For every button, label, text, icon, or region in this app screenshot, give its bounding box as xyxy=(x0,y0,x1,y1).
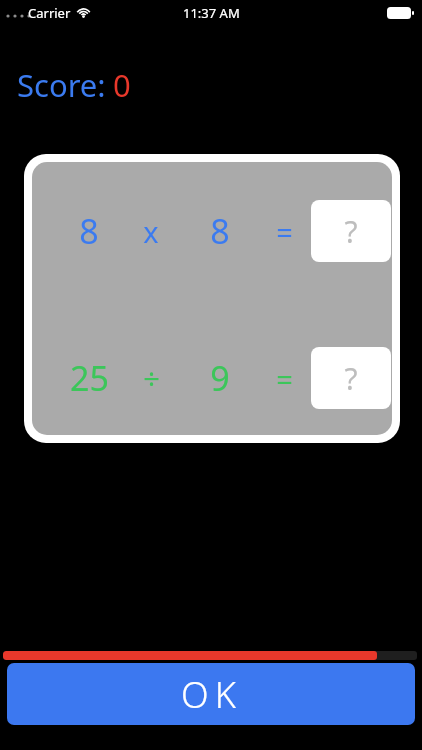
button[interactable]: Answer input xyxy=(311,347,391,409)
staticText: = xyxy=(276,359,293,398)
staticText: 11:37 AM xyxy=(183,4,240,22)
staticText: ? xyxy=(344,211,358,252)
staticText: ? xyxy=(344,358,358,399)
staticText: OK xyxy=(181,670,242,719)
staticText: 9 xyxy=(210,355,230,401)
staticText: 0 xyxy=(113,64,131,106)
staticText: 8 xyxy=(210,208,230,254)
staticText: 25 xyxy=(70,355,109,401)
staticText: ÷ xyxy=(143,359,160,398)
staticText: Score: xyxy=(17,64,106,106)
staticText: 8 xyxy=(79,208,99,254)
staticText: Carrier xyxy=(28,4,71,22)
staticText: x xyxy=(143,212,159,251)
button[interactable]: OK xyxy=(7,663,415,725)
staticText: = xyxy=(276,212,293,251)
button[interactable]: Answer input xyxy=(311,200,391,262)
